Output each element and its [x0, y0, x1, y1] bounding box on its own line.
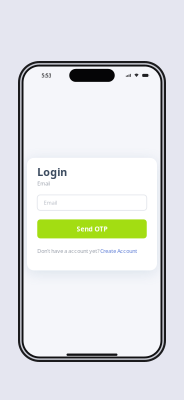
staticText: Don't have a account yet?	[37, 247, 100, 254]
staticText: Email	[37, 180, 50, 187]
staticText: Email	[44, 199, 57, 206]
staticText: Send OTP	[76, 224, 107, 233]
staticText: Login	[37, 165, 67, 179]
button[interactable]: Send OTP	[37, 219, 147, 238]
staticText: Create Account	[100, 247, 137, 254]
button[interactable]: Don't have a account yet?	[37, 248, 147, 253]
staticText: 5:53	[41, 72, 51, 79]
